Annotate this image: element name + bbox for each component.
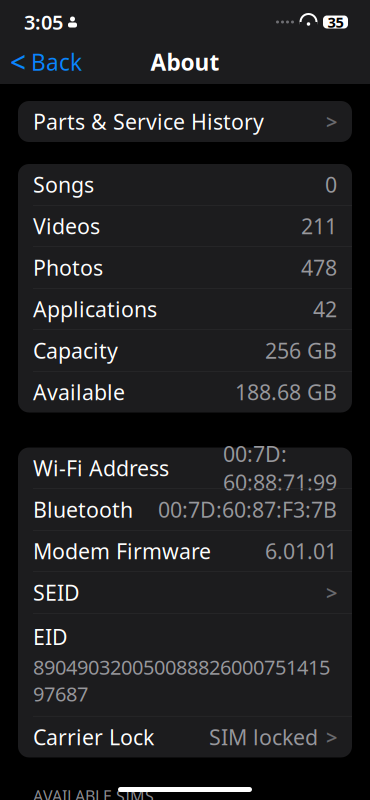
staticText: 35	[327, 12, 343, 32]
staticText: 478	[301, 253, 337, 282]
staticText: 00:7D:60:88:71:99	[223, 440, 337, 496]
button[interactable]: <	[0, 37, 82, 87]
staticText: Videos	[33, 212, 100, 240]
staticText: Carrier Lock	[33, 723, 154, 751]
staticText: <	[10, 43, 26, 81]
staticText: Photos	[33, 253, 103, 282]
staticText: Bluetooth	[33, 495, 133, 524]
staticText: Back	[31, 47, 82, 77]
staticText: Songs	[33, 170, 94, 199]
staticText: AVAILABLE SIMS	[33, 785, 154, 800]
staticText: 3:05	[24, 9, 63, 35]
staticText: >	[326, 579, 337, 606]
staticText: Applications	[33, 295, 157, 323]
staticText: >	[326, 724, 337, 750]
staticText: 00:7D:60:87:F3:7B	[158, 495, 337, 524]
staticText: >	[326, 108, 337, 135]
staticText: EID	[33, 622, 68, 651]
staticText: 6.01.01	[265, 537, 337, 565]
staticText: About	[150, 47, 219, 77]
button[interactable]: Parts & Service History	[18, 101, 352, 142]
staticText: Capacity	[33, 336, 118, 365]
staticText: SIM locked	[209, 723, 318, 751]
staticText: 89049032005008882600075141597687	[33, 654, 330, 707]
staticText: Parts & Service History	[33, 107, 264, 136]
staticText: SEID	[33, 578, 80, 607]
staticText: 211	[301, 212, 337, 240]
staticText: 256 GB	[265, 336, 337, 365]
staticText: Available	[33, 378, 125, 406]
staticText: 188.68 GB	[235, 378, 337, 406]
button[interactable]: Carrier Lock	[18, 716, 352, 757]
staticText: Modem Firmware	[33, 537, 211, 565]
staticText: 42	[313, 295, 337, 323]
staticText: 0	[325, 170, 337, 199]
staticText: Wi-Fi Address	[33, 454, 169, 482]
button[interactable]: SEID	[18, 572, 352, 613]
